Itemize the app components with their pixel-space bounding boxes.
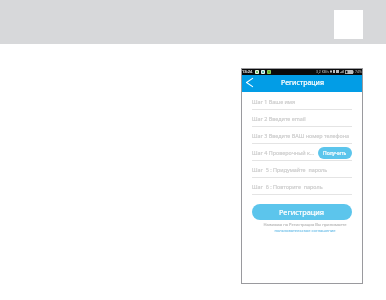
button[interactable]: пользовательское соглашение (244, 228, 366, 234)
staticText: 74% (355, 69, 362, 74)
staticText: Шаг 4 Проверочный к... (252, 149, 315, 156)
button[interactable]: Шаг 4 Проверочный к... (252, 144, 352, 160)
staticText: Шаг 5 : Придумайте пароль (252, 166, 328, 173)
button[interactable]: Шаг 1 Ваше имя (252, 93, 352, 109)
staticText: Получить (323, 150, 347, 157)
button[interactable]: Шаг 6 : Повторите пароль (252, 178, 352, 194)
staticText: Шаг 6 : Повторите пароль (252, 183, 323, 190)
staticText: Регистрация (279, 207, 325, 217)
staticText: Нажимая на Регистрация Вы принимаете (244, 222, 366, 228)
staticText: Шаг 3 Введите ВАШ номер телефона (252, 132, 349, 139)
button[interactable]: Back (241, 74, 257, 91)
button[interactable]: Шаг 5 : Придумайте пароль (252, 161, 352, 177)
staticText: Шаг 2 Введите email (252, 115, 306, 122)
staticText: 13:24 (242, 69, 253, 74)
button[interactable]: Шаг 3 Введите ВАШ номер телефона (252, 127, 352, 143)
staticText: 3,2 KB/s (316, 69, 329, 74)
button[interactable]: Получить (318, 147, 352, 159)
button[interactable]: Шаг 2 Введите email (252, 110, 352, 126)
staticText: Шаг 1 Ваше имя (252, 98, 296, 105)
button[interactable]: Регистрация (252, 204, 352, 220)
staticText: Регистрация (281, 78, 324, 88)
